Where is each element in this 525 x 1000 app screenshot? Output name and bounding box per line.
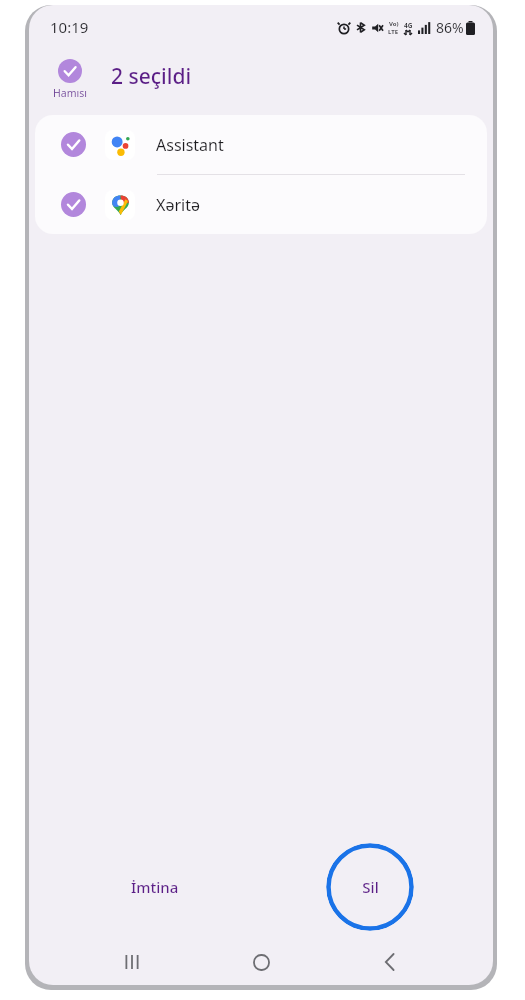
button[interactable]: Xəritə: [35, 175, 487, 234]
button[interactable]: Hamısı: [51, 57, 89, 102]
staticText: 4G: [404, 21, 413, 30]
staticText: Assistant: [156, 134, 224, 156]
staticText: 10:19: [50, 17, 89, 37]
staticText: Xəritə: [156, 194, 200, 216]
button[interactable]: Recents: [106, 939, 158, 985]
staticText: Hamısı: [53, 86, 87, 100]
staticText: Vo): [389, 20, 399, 28]
button[interactable]: Sil: [326, 843, 414, 931]
button[interactable]: Assistant: [35, 115, 487, 174]
staticText: LTE: [388, 28, 399, 36]
staticText: İmtina: [131, 877, 179, 897]
button[interactable]: Back: [364, 939, 416, 985]
staticText: 86%: [436, 18, 464, 37]
button[interactable]: Home: [235, 939, 287, 985]
staticText: 2 seçildi: [111, 62, 192, 91]
button[interactable]: İmtina: [115, 867, 195, 907]
staticText: Sil: [362, 877, 379, 897]
